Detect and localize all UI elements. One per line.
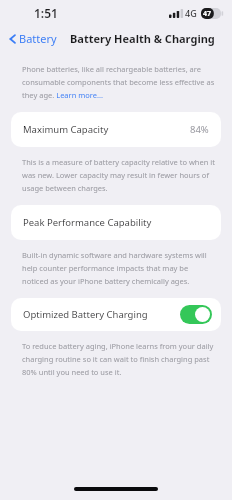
staticText: 4G: [185, 7, 197, 19]
staticText: Optimized Battery Charging: [23, 308, 148, 321]
staticText: 84%: [190, 123, 209, 136]
button[interactable]: Peak Performance Capability: [11, 205, 221, 240]
staticText: To reduce battery aging, iPhone learns f…: [22, 341, 216, 377]
button[interactable]: Battery: [7, 28, 59, 49]
button[interactable]: Optimized Battery Charging: [11, 298, 221, 331]
staticText: Battery Health & Charging: [70, 31, 215, 46]
staticText: Peak Performance Capability: [23, 216, 152, 229]
button[interactable]: Maximum Capacity: [11, 112, 221, 147]
staticText: 47: [203, 9, 212, 19]
staticText: 1:51: [34, 5, 58, 21]
button[interactable]: Toggle Optimized Battery Charging: [180, 305, 212, 324]
staticText: Maximum Capacity: [23, 123, 109, 136]
staticText: Built-in dynamic software and hardware s…: [22, 250, 216, 286]
staticText: Battery: [19, 31, 57, 46]
staticText: Phone batteries, like all rechargeable b…: [22, 64, 216, 100]
staticText: This is a measure of battery capacity re…: [22, 157, 216, 193]
